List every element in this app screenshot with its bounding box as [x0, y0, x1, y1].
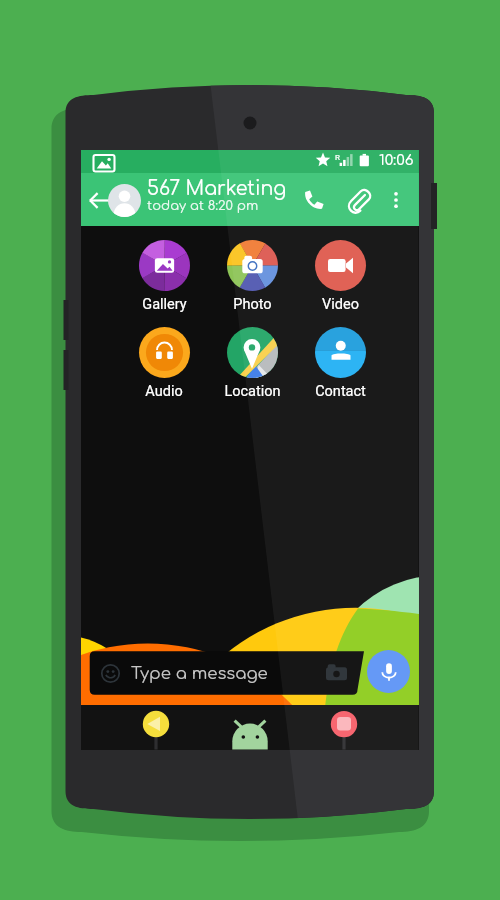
button[interactable]: Video [292, 240, 388, 313]
button[interactable]: Attach file [341, 183, 375, 217]
staticText: today at 8:20 pm [147, 199, 259, 213]
staticText: 10:06 [379, 152, 414, 169]
button[interactable]: Location [204, 327, 300, 400]
button[interactable]: Type a message [90, 651, 358, 695]
button[interactable]: Back [123, 705, 189, 750]
staticText: Contact [315, 383, 366, 400]
button[interactable]: Gallery [116, 240, 212, 313]
staticText: Audio [145, 383, 183, 400]
button[interactable]: Contact [292, 327, 388, 400]
staticText: Location [224, 383, 281, 400]
staticText: R [335, 153, 340, 162]
button[interactable]: Home [217, 705, 283, 750]
button[interactable]: Photo [204, 240, 300, 313]
button[interactable]: Audio [116, 327, 212, 400]
staticText: Photo [233, 296, 272, 313]
button[interactable]: Back [84, 185, 114, 215]
button[interactable]: Camera [322, 659, 350, 687]
button[interactable]: More options [381, 185, 411, 215]
button[interactable]: Call [297, 183, 331, 217]
staticText: Type a message [131, 664, 268, 682]
staticText: Gallery [142, 296, 187, 313]
button[interactable]: Recents [311, 705, 377, 750]
staticText: 567 Marketing [147, 178, 287, 199]
button[interactable]: Contact avatar [108, 184, 141, 217]
button[interactable]: 567 Marketing [147, 178, 307, 213]
button[interactable]: Voice message [367, 650, 410, 693]
staticText: Video [322, 296, 359, 313]
